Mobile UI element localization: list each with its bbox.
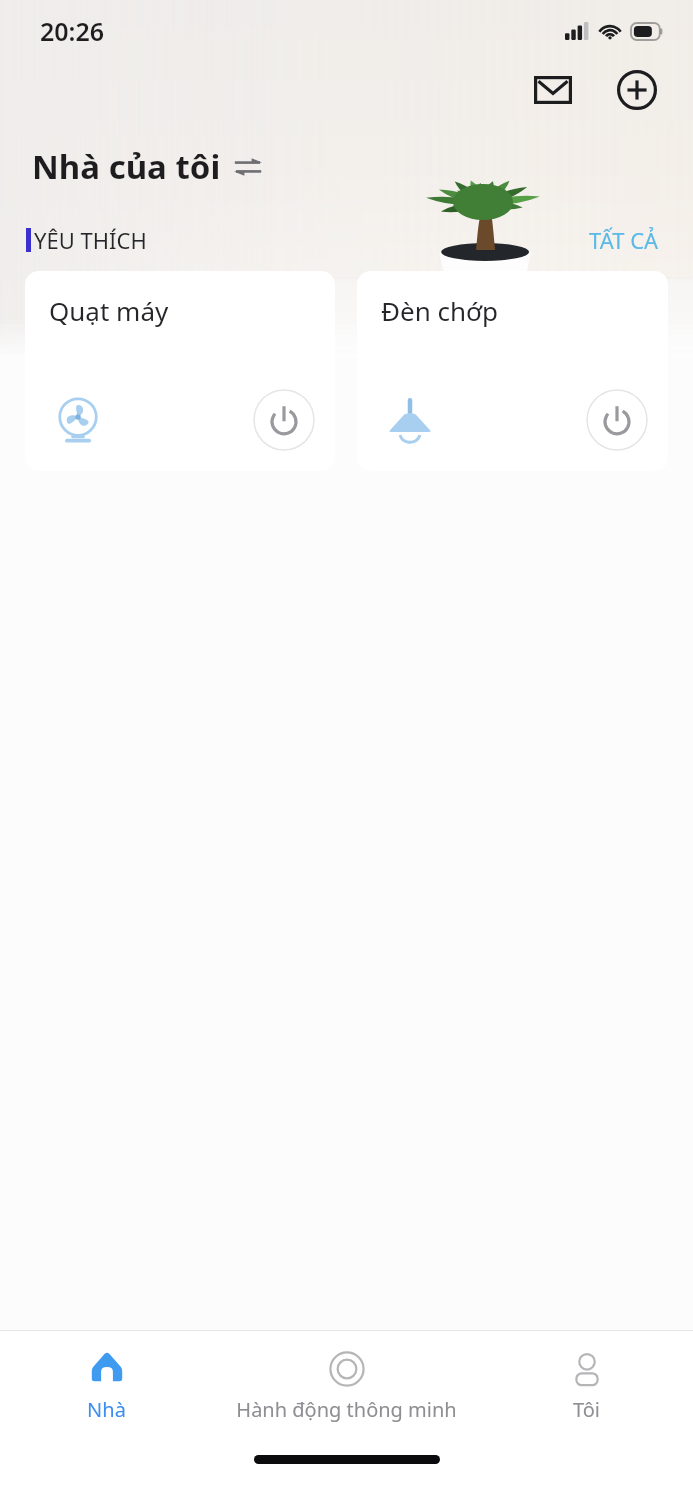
button[interactable]: Đèn chớp xyxy=(357,271,668,471)
button[interactable]: TẤT CẢ xyxy=(589,225,693,255)
button[interactable]: Add device xyxy=(609,62,665,118)
button[interactable]: Nhà của tôi xyxy=(32,144,693,189)
button[interactable]: YÊU THÍCH xyxy=(34,225,147,255)
button[interactable]: Messages xyxy=(525,62,581,118)
staticText: Nhà của tôi xyxy=(32,144,221,189)
button[interactable]: Tôi xyxy=(480,1348,693,1423)
button[interactable]: Power toggle xyxy=(586,389,648,451)
staticText: Nhà xyxy=(87,1396,126,1423)
staticText: Tôi xyxy=(573,1396,600,1423)
button[interactable]: Quạt máy xyxy=(25,271,335,471)
staticText: Hành động thông minh xyxy=(236,1396,457,1423)
button[interactable]: Hành động thông minh xyxy=(213,1348,480,1423)
staticText: 20:26 xyxy=(40,14,105,48)
staticText: Quạt máy xyxy=(49,293,169,328)
staticText: Đèn chớp xyxy=(381,293,499,328)
button[interactable]: Power toggle xyxy=(253,389,315,451)
button[interactable]: Nhà xyxy=(0,1348,213,1423)
